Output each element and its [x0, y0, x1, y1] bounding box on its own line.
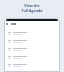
- staticText: View the: [24, 3, 40, 8]
- staticText: Full Agenda: [21, 8, 43, 13]
